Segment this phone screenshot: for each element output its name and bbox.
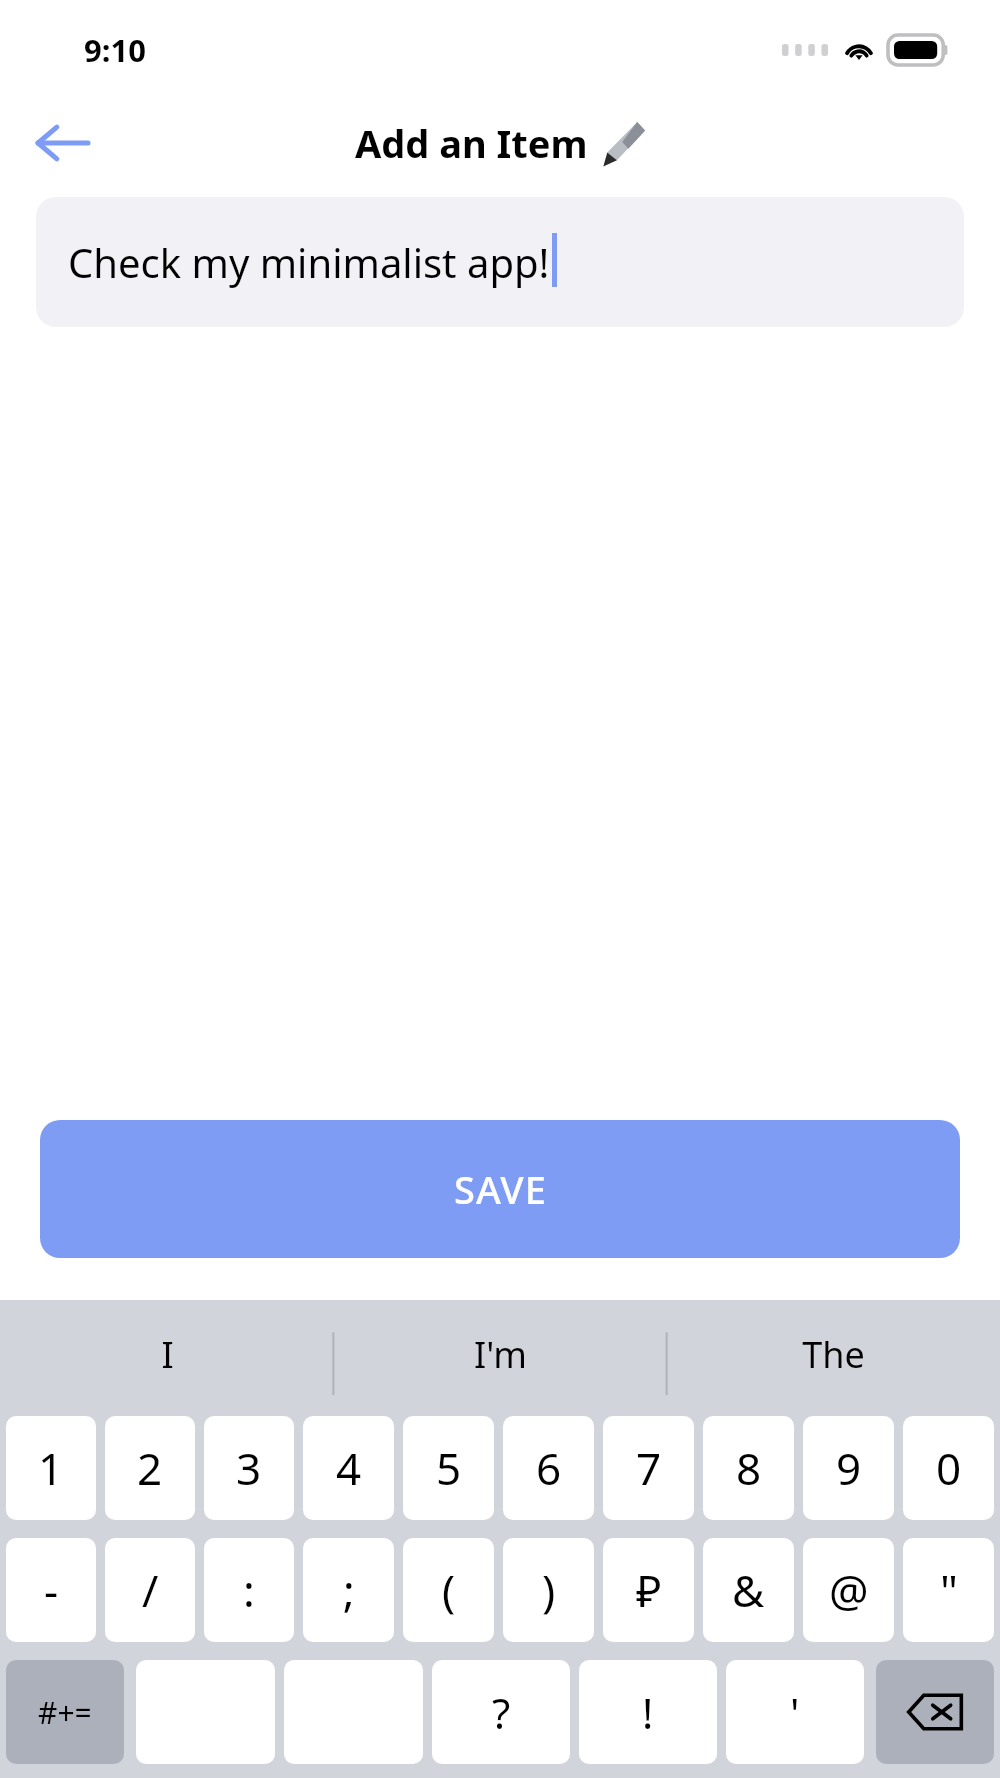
staticText: @ <box>829 1560 869 1620</box>
button[interactable]: & <box>703 1538 794 1642</box>
button[interactable]: Back <box>22 103 102 183</box>
button[interactable]: ) <box>503 1538 594 1642</box>
staticText: - <box>44 1560 59 1620</box>
staticText: ( <box>442 1560 456 1620</box>
button[interactable]: The <box>667 1300 1000 1408</box>
button[interactable] <box>284 1660 423 1764</box>
staticText: I <box>161 1330 174 1379</box>
button[interactable]: I <box>0 1300 334 1408</box>
button[interactable]: 7 <box>603 1416 694 1520</box>
staticText: " <box>940 1560 958 1620</box>
staticText: The <box>802 1330 865 1379</box>
staticText: ) <box>542 1560 556 1620</box>
staticText: / <box>142 1560 159 1620</box>
button[interactable]: I'm <box>334 1300 667 1408</box>
button[interactable]: : <box>204 1538 294 1642</box>
button[interactable]: SAVE <box>40 1120 960 1258</box>
button[interactable]: " <box>903 1538 994 1642</box>
staticText: 7 <box>636 1438 662 1498</box>
button[interactable]: ( <box>403 1538 494 1642</box>
staticText: Check my minimalist app! <box>68 235 550 289</box>
button[interactable]: 2 <box>105 1416 195 1520</box>
staticText: #+= <box>38 1692 92 1733</box>
button[interactable]: 1 <box>6 1416 96 1520</box>
button[interactable]: ! <box>579 1660 717 1764</box>
button[interactable]: ; <box>303 1538 394 1642</box>
staticText: I'm <box>474 1330 527 1379</box>
button[interactable] <box>136 1660 275 1764</box>
button[interactable]: @ <box>803 1538 894 1642</box>
staticText: 3 <box>236 1438 262 1498</box>
staticText: ; <box>343 1560 355 1620</box>
staticText: SAVE <box>454 1163 547 1215</box>
button[interactable]: ' <box>726 1660 864 1764</box>
button[interactable]: #+= <box>6 1660 124 1764</box>
staticText: 0 <box>936 1438 962 1498</box>
staticText: ₽ <box>636 1560 662 1620</box>
button[interactable]: 3 <box>204 1416 294 1520</box>
staticText: 9 <box>836 1438 862 1498</box>
button[interactable]: 5 <box>403 1416 494 1520</box>
staticText: 9:10 <box>84 29 146 71</box>
staticText: : <box>243 1560 255 1620</box>
button[interactable]: 0 <box>903 1416 994 1520</box>
staticText: 1 <box>38 1438 64 1498</box>
button[interactable]: 8 <box>703 1416 794 1520</box>
staticText: 2 <box>137 1438 163 1498</box>
staticText: & <box>732 1560 765 1620</box>
button[interactable]: Check my minimalist app! <box>36 197 964 327</box>
staticText: ! <box>642 1684 654 1741</box>
staticText: 6 <box>536 1438 562 1498</box>
button[interactable]: 4 <box>303 1416 394 1520</box>
button[interactable]: - <box>6 1538 96 1642</box>
button[interactable]: ₽ <box>603 1538 694 1642</box>
button[interactable]: 9 <box>803 1416 894 1520</box>
button[interactable]: Backspace <box>876 1660 994 1764</box>
staticText: Add an Item <box>355 117 588 169</box>
button[interactable]: 6 <box>503 1416 594 1520</box>
button[interactable]: ? <box>432 1660 570 1764</box>
staticText: ? <box>492 1684 511 1741</box>
staticText: 4 <box>336 1438 362 1498</box>
staticText: 8 <box>736 1438 762 1498</box>
staticText: 5 <box>436 1438 462 1498</box>
button[interactable]: / <box>105 1538 195 1642</box>
staticText: ' <box>790 1684 800 1741</box>
